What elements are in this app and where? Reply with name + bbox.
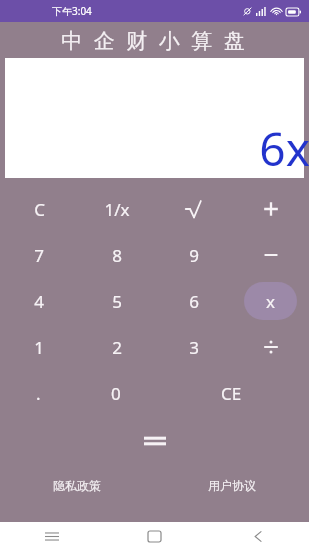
- button[interactable]: 0: [77, 370, 154, 416]
- button[interactable]: 8: [90, 236, 143, 274]
- staticText: 8: [112, 244, 122, 267]
- staticText: C: [34, 198, 45, 221]
- staticText: x: [266, 290, 275, 313]
- button[interactable]: 6: [167, 282, 220, 320]
- staticText: 1/x: [104, 198, 130, 221]
- button[interactable]: [244, 190, 297, 228]
- button[interactable]: C: [12, 190, 66, 228]
- staticText: 隐私政策: [53, 478, 101, 493]
- button[interactable]: Back: [206, 522, 309, 550]
- staticText: 9: [189, 244, 199, 267]
- button[interactable]: .: [0, 370, 77, 416]
- button[interactable]: [244, 236, 297, 274]
- staticText: 3: [189, 336, 199, 359]
- button[interactable]: 1/x: [90, 190, 143, 228]
- button[interactable]: [167, 190, 220, 228]
- staticText: .: [36, 382, 41, 405]
- staticText: 中 企 财 小 算 盘: [61, 26, 248, 55]
- staticText: CE: [221, 382, 242, 405]
- button[interactable]: Home: [103, 522, 206, 550]
- staticText: 2: [112, 336, 122, 359]
- button[interactable]: Recent apps: [0, 522, 103, 550]
- button[interactable]: 2: [90, 328, 143, 366]
- staticText: 4: [34, 290, 44, 313]
- staticText: 6x: [259, 117, 309, 180]
- staticText: 下午3:04: [52, 4, 92, 18]
- staticText: 用户协议: [208, 478, 256, 493]
- button[interactable]: 1: [12, 328, 66, 366]
- button[interactable]: 用户协议: [154, 470, 309, 500]
- button[interactable]: Equals: [123, 419, 187, 463]
- button[interactable]: 隐私政策: [0, 470, 154, 500]
- button[interactable]: [244, 328, 297, 366]
- staticText: 0: [111, 382, 121, 405]
- button[interactable]: 9: [167, 236, 220, 274]
- button[interactable]: 3: [167, 328, 220, 366]
- button[interactable]: 5: [90, 282, 143, 320]
- staticText: 6: [189, 290, 199, 313]
- button[interactable]: 4: [12, 282, 66, 320]
- staticText: 7: [34, 244, 44, 267]
- button[interactable]: 7: [12, 236, 66, 274]
- button[interactable]: CE: [154, 370, 309, 416]
- staticText: 1: [34, 336, 44, 359]
- button[interactable]: x: [244, 282, 297, 320]
- staticText: 5: [112, 290, 122, 313]
